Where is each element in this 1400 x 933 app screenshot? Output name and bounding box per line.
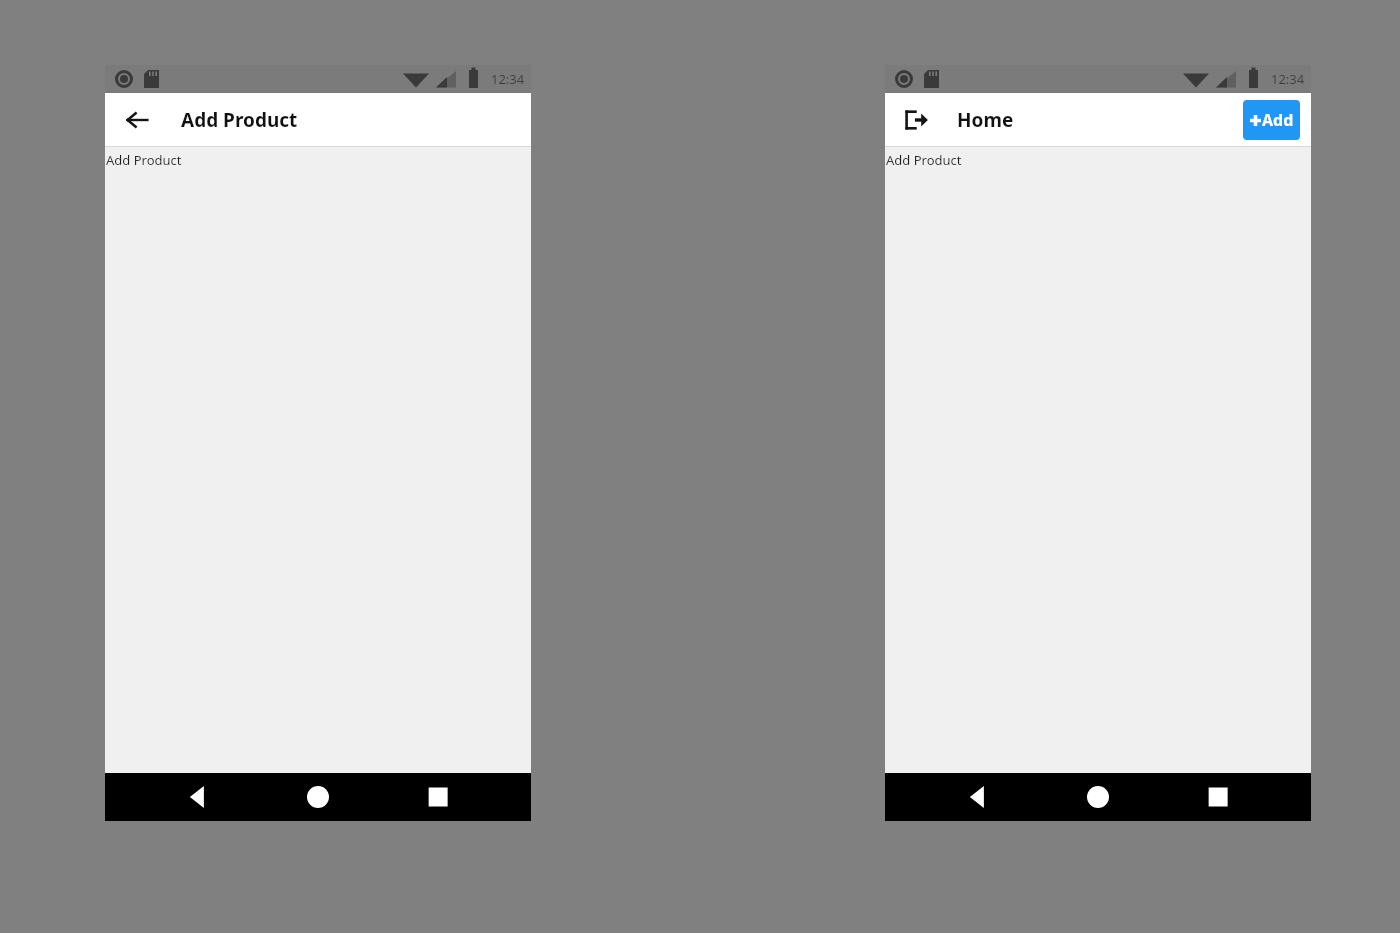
button[interactable]: Back (117, 100, 157, 140)
button[interactable]: Logout (897, 100, 937, 140)
staticText: 12:34 (1271, 70, 1305, 88)
staticText: Add Product (181, 107, 298, 133)
staticText: Add Product (106, 151, 182, 169)
staticText: 12:34 (491, 70, 525, 88)
staticText: Home (957, 107, 1014, 133)
staticText: Add Product (886, 151, 962, 169)
button[interactable]: Add (1243, 100, 1300, 140)
staticText: Add (1262, 109, 1294, 131)
